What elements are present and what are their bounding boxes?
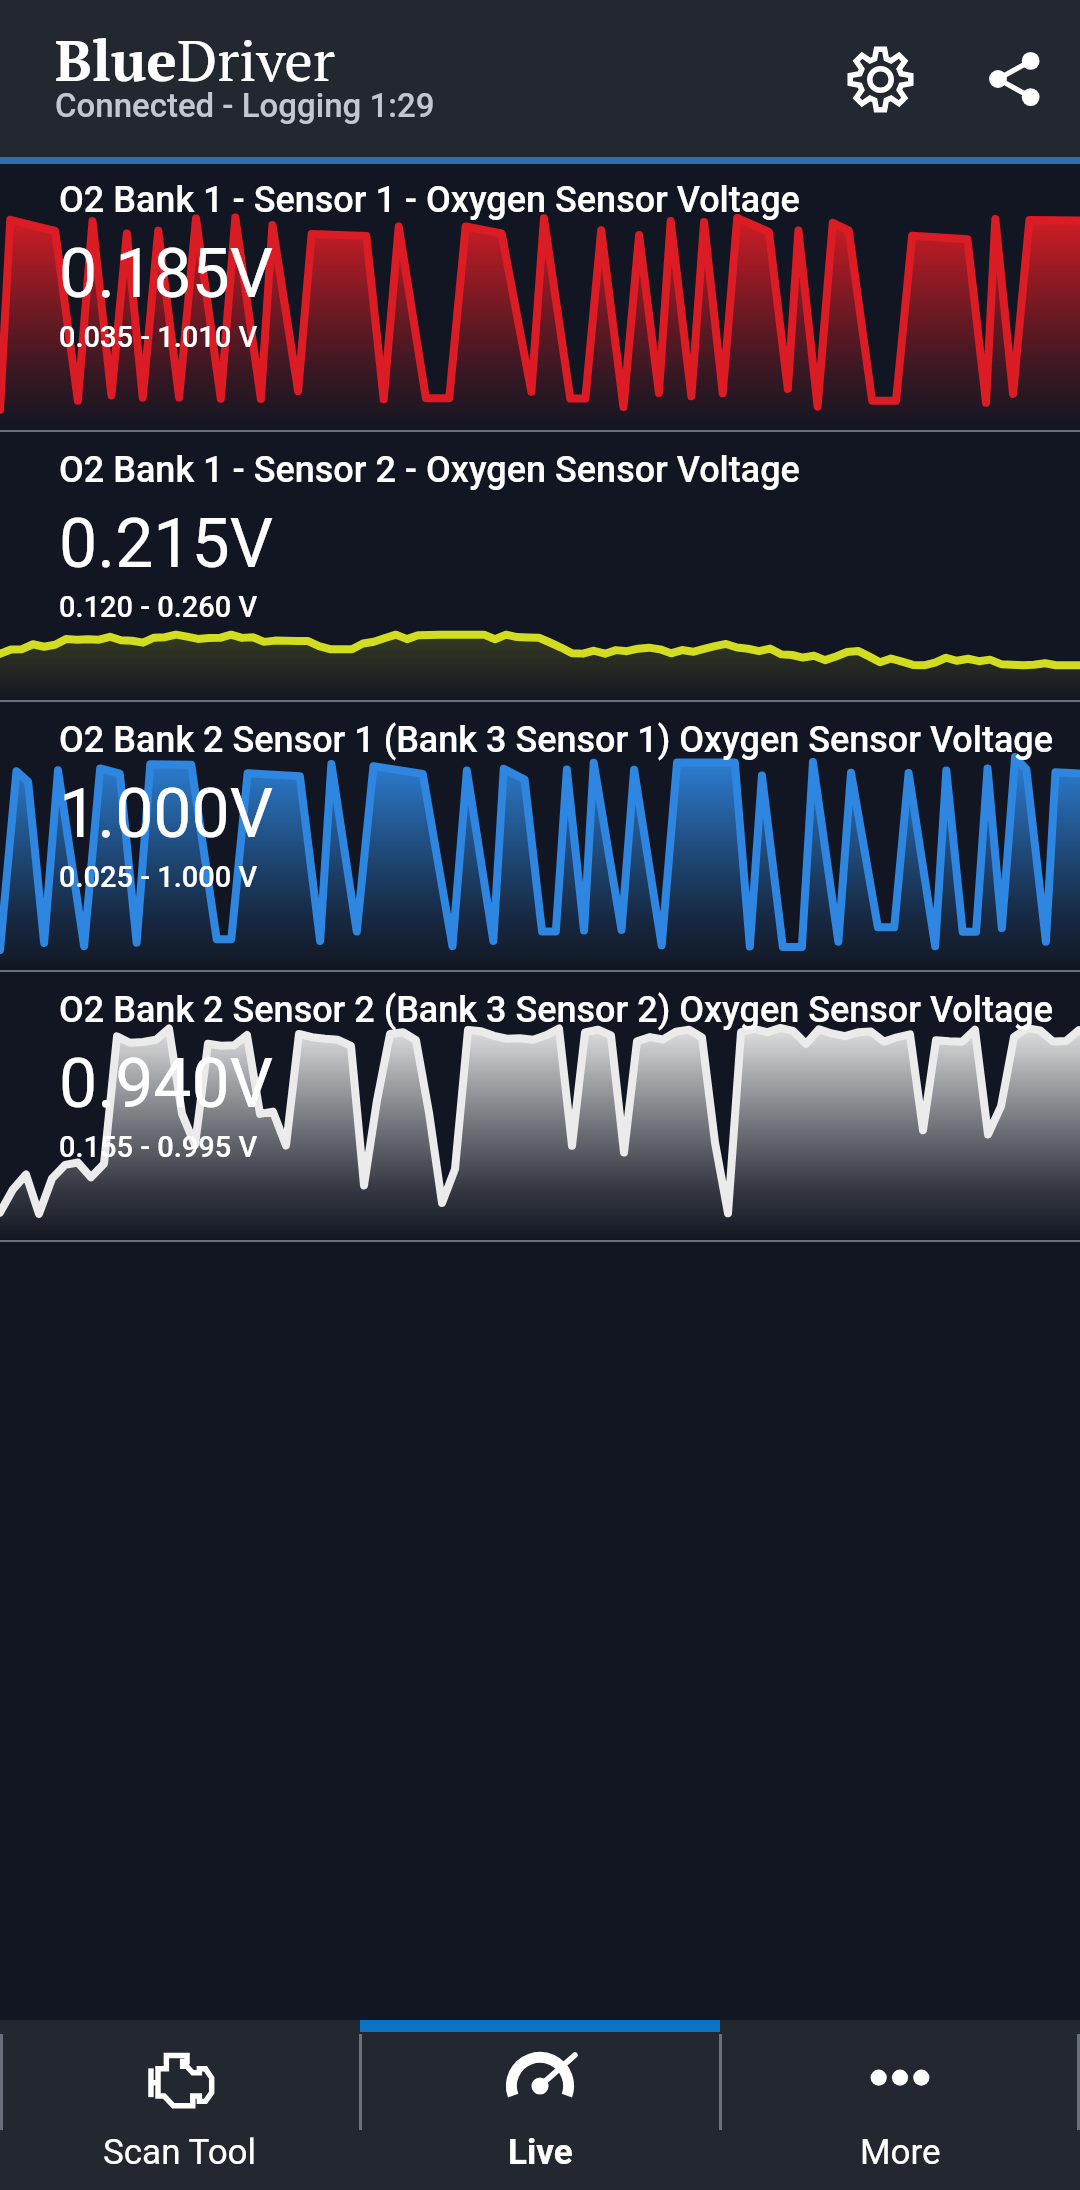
button[interactable]: More	[720, 2032, 1080, 2190]
staticText: 0.025 - 1.000 V	[59, 860, 258, 894]
staticText: O2 Bank 2 Sensor 2 (Bank 3 Sensor 2) Oxy…	[59, 989, 1054, 1031]
staticText: More	[860, 2132, 941, 2173]
staticText: 0.215V	[59, 504, 274, 584]
button[interactable]: O2 Bank 1 - Sensor 1 - Oxygen Sensor Vol…	[0, 162, 1080, 430]
staticText: BlueDriver	[55, 22, 335, 98]
staticText: Scan Tool	[103, 2132, 257, 2173]
button[interactable]: O2 Bank 2 Sensor 2 (Bank 3 Sensor 2) Oxy…	[0, 972, 1080, 1240]
button[interactable]: Settings	[806, 14, 936, 144]
staticText: 0.120 - 0.260 V	[59, 590, 258, 624]
staticText: Connected - Logging 1:29	[55, 86, 435, 125]
staticText: O2 Bank 2 Sensor 1 (Bank 3 Sensor 1) Oxy…	[59, 719, 1054, 761]
button[interactable]: O2 Bank 2 Sensor 1 (Bank 3 Sensor 1) Oxy…	[0, 702, 1080, 970]
staticText: 0.185V	[59, 234, 274, 314]
button[interactable]: Share	[936, 14, 1066, 144]
button[interactable]: O2 Bank 1 - Sensor 2 - Oxygen Sensor Vol…	[0, 432, 1080, 700]
staticText: 0.155 - 0.995 V	[59, 1130, 258, 1164]
staticText: O2 Bank 1 - Sensor 1 - Oxygen Sensor Vol…	[59, 179, 800, 221]
button[interactable]: Live	[360, 2032, 720, 2190]
button[interactable]: Scan Tool	[0, 2032, 360, 2190]
staticText: O2 Bank 1 - Sensor 2 - Oxygen Sensor Vol…	[59, 449, 800, 491]
staticText: 0.035 - 1.010 V	[59, 320, 258, 354]
staticText: Live	[508, 2132, 573, 2173]
staticText: 0.940V	[59, 1044, 274, 1124]
staticText: 1.000V	[59, 774, 274, 854]
